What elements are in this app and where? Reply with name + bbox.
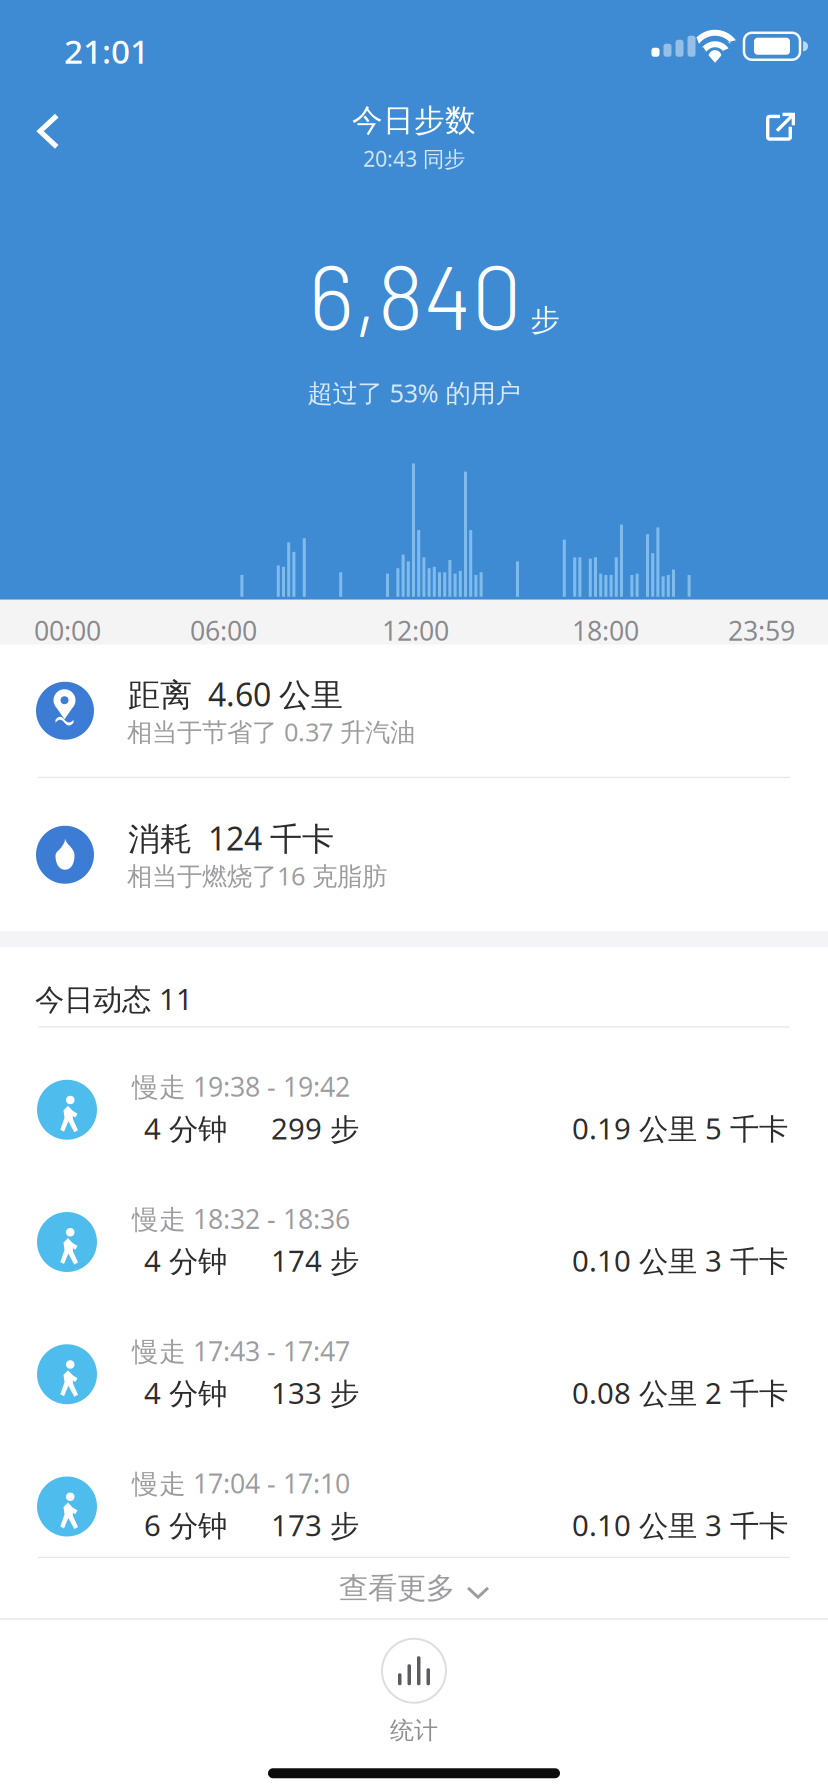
- staticText: 4 分钟: [144, 1373, 227, 1412]
- staticText: 0.10 公里 3 千卡: [572, 1505, 788, 1544]
- button[interactable]: 慢走 19:38 - 19:42: [0, 1028, 828, 1160]
- staticText: 6 分钟: [144, 1505, 227, 1544]
- staticText: 相当于燃烧了16 克脂肪: [127, 859, 387, 892]
- staticText: 0.08 公里 2 千卡: [572, 1373, 788, 1412]
- staticText: 6,840: [308, 241, 521, 348]
- button[interactable]: 慢走 18:32 - 18:36: [0, 1160, 828, 1292]
- staticText: 步: [530, 302, 559, 338]
- staticText: 0.10 公里 3 千卡: [572, 1241, 788, 1280]
- staticText: 超过了 53% 的用户: [307, 376, 520, 409]
- button[interactable]: Share: [732, 84, 828, 172]
- staticText: 今日步数: [352, 102, 476, 139]
- staticText: 4 分钟: [144, 1109, 227, 1148]
- staticText: 18:00: [572, 613, 639, 648]
- button[interactable]: 距离 4.60 公里: [0, 645, 828, 777]
- button[interactable]: 消耗 124 千卡: [0, 778, 828, 931]
- staticText: 今日动态 11: [35, 979, 193, 1018]
- staticText: 慢走 17:04 - 17:10: [132, 1465, 350, 1501]
- staticText: 174 步: [271, 1241, 359, 1280]
- staticText: 查看更多: [339, 1570, 455, 1606]
- staticText: 慢走 19:38 - 19:42: [132, 1069, 350, 1104]
- staticText: 0.19 公里 5 千卡: [572, 1109, 788, 1148]
- staticText: 统计: [390, 1716, 438, 1745]
- staticText: 12:00: [382, 613, 449, 648]
- staticText: 距离 4.60 公里: [128, 673, 343, 715]
- button[interactable]: 查看更多: [0, 1558, 828, 1618]
- button[interactable]: 统计: [0, 1620, 828, 1745]
- staticText: 21:01: [64, 29, 149, 73]
- staticText: 4 分钟: [144, 1241, 227, 1280]
- staticText: 23:59: [728, 613, 795, 648]
- staticText: 相当于节省了 0.37 升汽油: [127, 715, 415, 748]
- button[interactable]: 慢走 17:43 - 17:47: [0, 1292, 828, 1424]
- staticText: 173 步: [271, 1505, 359, 1544]
- staticText: 慢走 18:32 - 18:36: [132, 1201, 350, 1236]
- button[interactable]: 慢走 17:04 - 17:10: [0, 1424, 828, 1557]
- staticText: 133 步: [271, 1373, 359, 1412]
- staticText: 00:00: [34, 613, 101, 648]
- staticText: 299 步: [271, 1109, 359, 1148]
- staticText: 消耗 124 千卡: [128, 817, 334, 859]
- staticText: 06:00: [190, 613, 257, 648]
- button[interactable]: Back: [0, 88, 96, 176]
- staticText: 慢走 17:43 - 17:47: [132, 1333, 350, 1369]
- staticText: 20:43 同步: [363, 144, 465, 173]
